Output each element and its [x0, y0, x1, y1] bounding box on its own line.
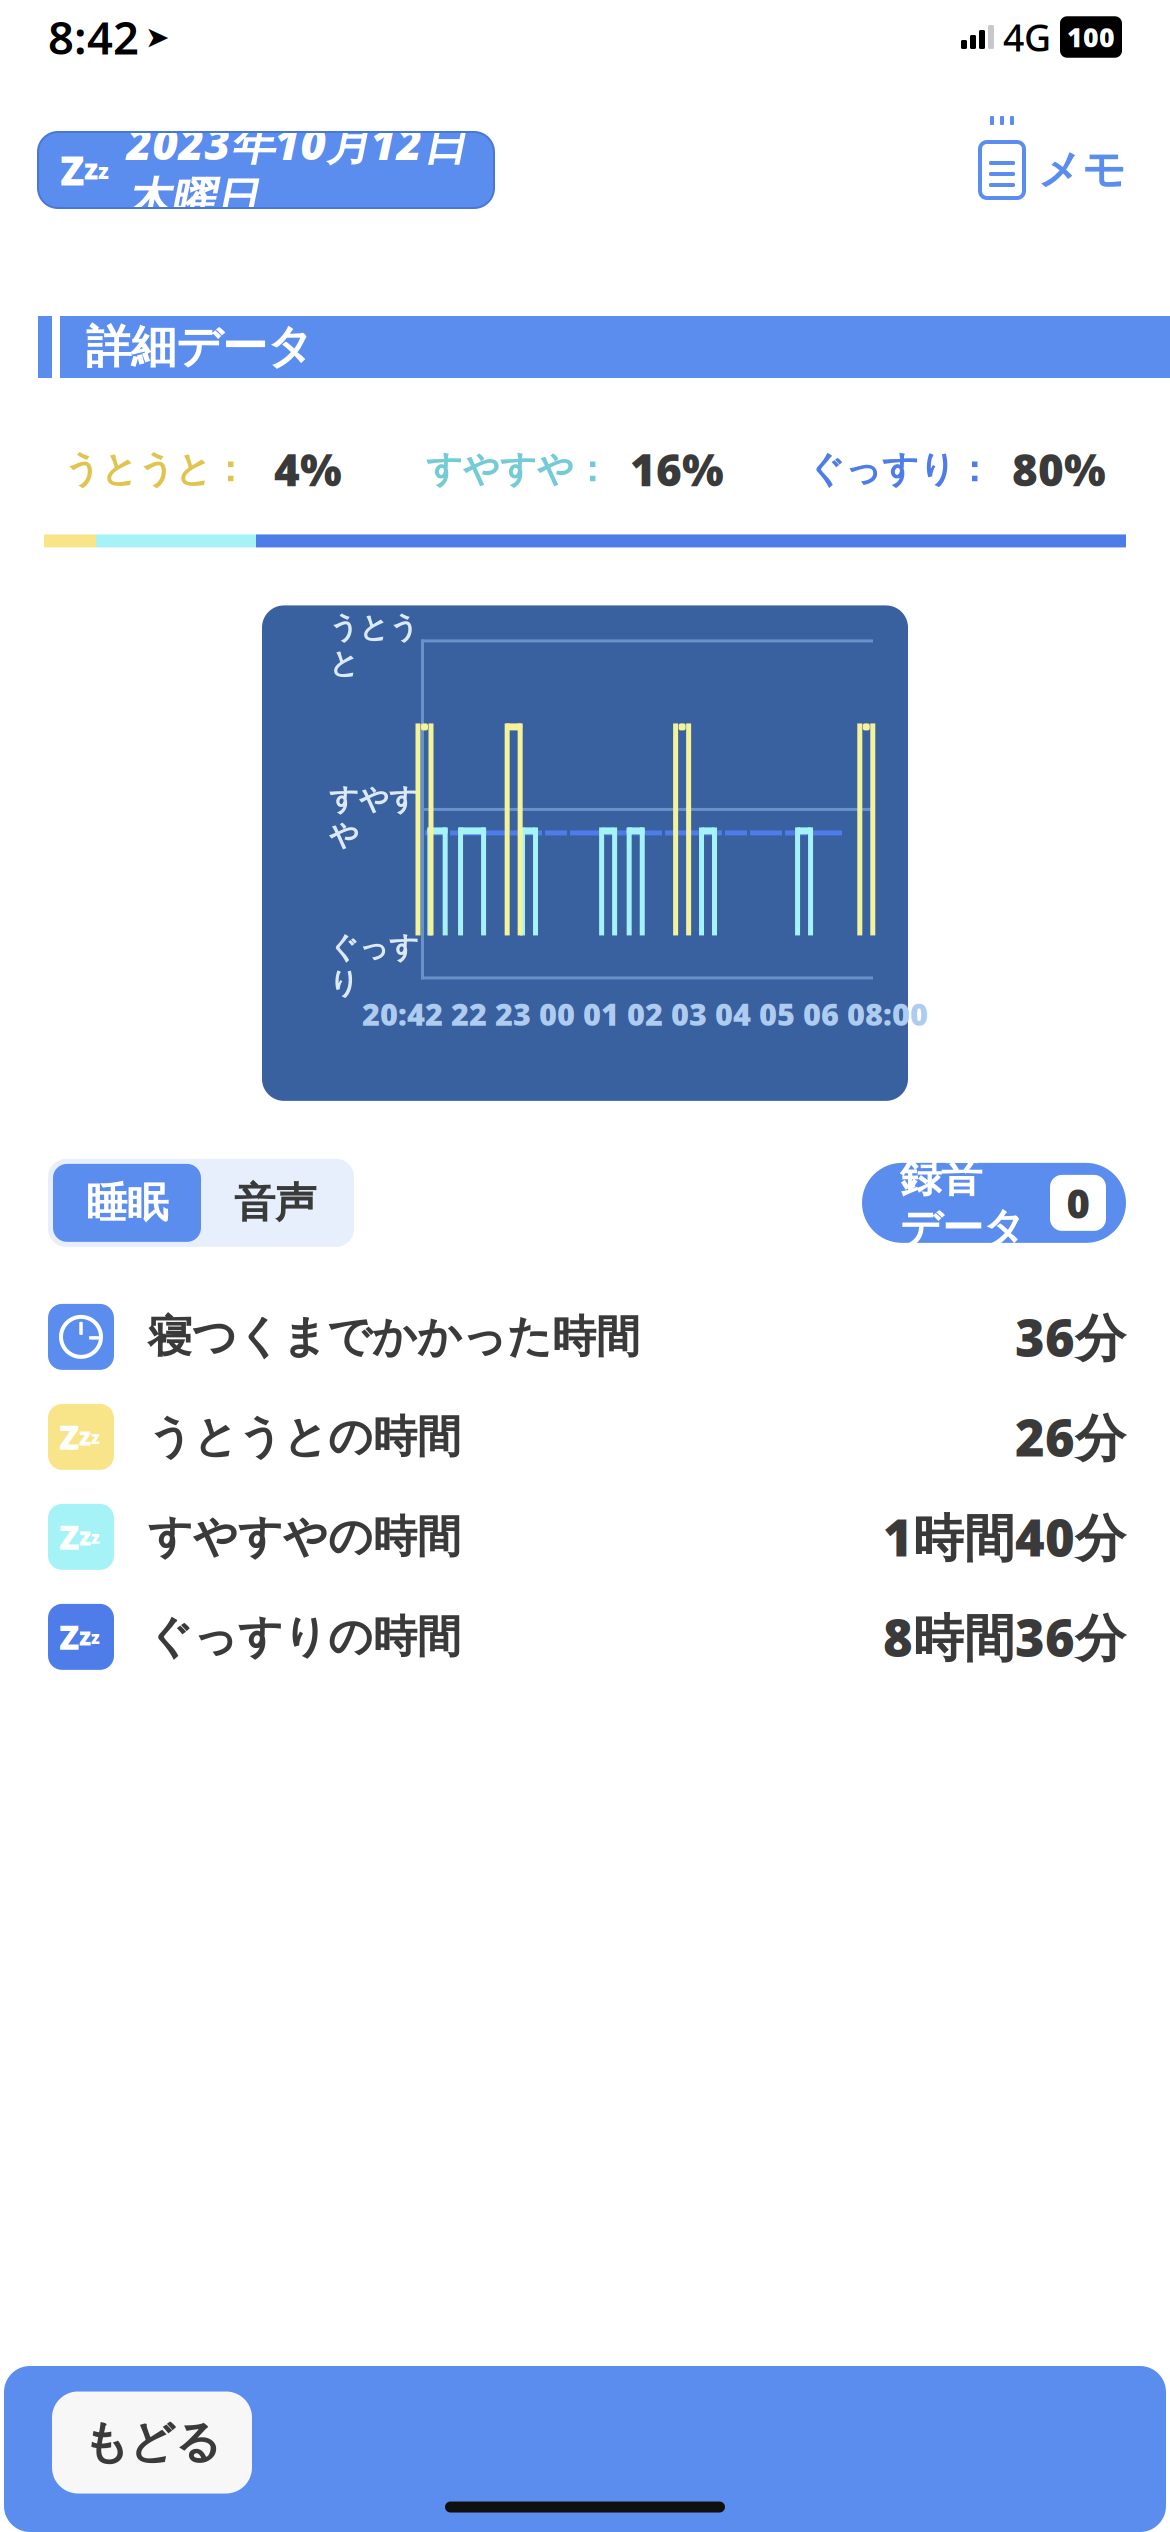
staticText: 詳細データ	[86, 319, 313, 375]
staticText: z	[84, 150, 98, 187]
staticText: 02	[627, 993, 663, 1034]
staticText: 06	[803, 993, 839, 1034]
staticText: すやすやの時間	[148, 1510, 461, 1564]
staticText: 04	[715, 993, 751, 1034]
staticText: z	[98, 157, 109, 185]
staticText: 0	[1066, 1176, 1089, 1229]
staticText: z	[79, 1620, 91, 1652]
staticText: ぐっすりの時間	[148, 1610, 461, 1664]
staticText: 08:00	[847, 993, 928, 1034]
staticText: 8:42	[48, 7, 139, 67]
staticText: もどる	[83, 2415, 221, 2470]
button[interactable]: メモ	[978, 140, 1126, 200]
staticText: すやすや	[329, 781, 419, 853]
staticText: 8時間36分	[883, 1603, 1126, 1670]
button[interactable]: 録音データ	[862, 1163, 1126, 1243]
staticText: Z	[59, 1415, 79, 1459]
staticText: 寝つくまでかかった時間	[148, 1310, 640, 1364]
staticText: z	[79, 1420, 91, 1452]
staticText: Z	[59, 1615, 79, 1659]
staticText: 23	[495, 993, 531, 1034]
staticText: Z	[59, 1515, 79, 1559]
button[interactable]: 睡眠	[53, 1164, 201, 1242]
button[interactable]: もどる	[52, 2391, 252, 2493]
button[interactable]: Z	[0, 1587, 1170, 1687]
staticText: 20:42	[362, 993, 443, 1034]
staticText: 1時間40分	[883, 1503, 1126, 1570]
staticText: 4G	[1003, 12, 1051, 62]
staticText: z	[79, 1520, 91, 1552]
staticText: z	[91, 1626, 100, 1649]
staticText: うとうと：	[64, 447, 248, 491]
staticText: ➤	[145, 20, 170, 54]
staticText: 00	[539, 993, 575, 1034]
staticText: z	[91, 1426, 100, 1449]
staticText: 100	[1067, 19, 1115, 55]
staticText: 2023年10月12日 木曜日	[126, 114, 466, 226]
staticText: z	[91, 1526, 100, 1549]
staticText: 16%	[630, 440, 724, 498]
staticText: うとうと	[329, 609, 419, 681]
staticText: 01	[583, 993, 619, 1034]
staticText: 22	[451, 993, 487, 1034]
button[interactable]: Z	[0, 1387, 1170, 1487]
staticText: 4%	[274, 440, 342, 498]
staticText: 05	[759, 993, 795, 1034]
staticText: 36分	[1015, 1303, 1126, 1370]
button[interactable]: Z	[0, 1487, 1170, 1587]
button[interactable]: 寝つくまでかかった時間	[0, 1287, 1170, 1387]
staticText: すやすや：	[426, 447, 610, 491]
staticText: 音声	[234, 1177, 316, 1228]
staticText: ぐっすり：	[808, 447, 992, 491]
staticText: 録音データ	[900, 1152, 1025, 1254]
staticText: 26分	[1015, 1403, 1126, 1470]
staticText: Z	[60, 143, 84, 196]
staticText: 睡眠	[86, 1177, 168, 1228]
button[interactable]: 音声	[201, 1164, 349, 1242]
staticText: ぐっすり	[329, 929, 419, 1002]
staticText: メモ	[1038, 144, 1126, 196]
staticText: うとうとの時間	[148, 1410, 461, 1464]
button[interactable]: Z	[38, 132, 494, 208]
staticText: 03	[671, 993, 707, 1034]
staticText: 80%	[1012, 440, 1106, 498]
